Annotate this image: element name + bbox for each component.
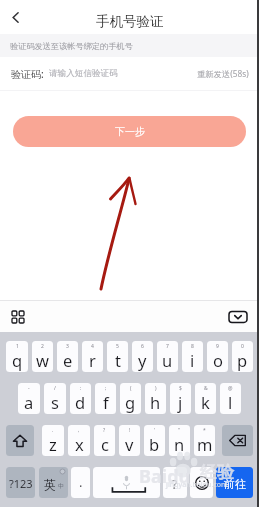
staticText: 英: [44, 477, 56, 492]
staticText: 前往: [224, 477, 246, 491]
button[interactable]: Hide keyboard: [227, 306, 249, 328]
button[interactable]: 6: [132, 341, 153, 372]
staticText: /: [54, 385, 56, 392]
button[interactable]: 0: [232, 341, 253, 372]
button[interactable]: ;: [95, 383, 116, 414]
staticText: :: [80, 385, 82, 392]
staticText: $: [179, 385, 182, 392]
button[interactable]: .: [42, 425, 64, 456]
button[interactable]: Back: [0, 2, 30, 32]
button[interactable]: Shift: [6, 425, 34, 456]
staticText: p: [237, 349, 248, 371]
button[interactable]: :: [70, 383, 91, 414]
staticText: e: [63, 349, 73, 371]
staticText: .: [79, 473, 83, 491]
button[interactable]: ?: [163, 467, 187, 498]
staticText: 1: [16, 343, 19, 350]
staticText: r: [89, 349, 96, 371]
staticText: u: [162, 349, 173, 371]
button[interactable]: ,: [68, 425, 90, 456]
button[interactable]: ': [144, 425, 165, 456]
staticText: g: [125, 391, 136, 413]
button[interactable]: 7: [157, 341, 178, 372]
staticText: h: [150, 391, 161, 413]
staticText: jingyan.baidu.com: [166, 480, 228, 490]
staticText: -: [28, 385, 30, 392]
staticText: !: [129, 427, 131, 434]
staticText: 0: [241, 343, 244, 350]
staticText: v: [125, 433, 134, 455]
button[interactable]: 2: [32, 341, 53, 372]
button[interactable]: *: [194, 425, 215, 456]
staticText: .: [52, 427, 54, 434]
staticText: 2: [41, 343, 44, 350]
staticText: *: [203, 427, 206, 434]
staticText: ?123: [9, 476, 33, 491]
button[interactable]: 8: [182, 341, 203, 372]
button[interactable]: -: [18, 383, 40, 414]
button[interactable]: 英: [39, 467, 68, 498]
button[interactable]: ?: [94, 425, 115, 456]
staticText: 9: [216, 343, 219, 350]
staticText: 下一步: [115, 125, 145, 138]
staticText: j: [178, 391, 183, 413]
staticText: ,: [78, 427, 80, 434]
staticText: (: [130, 385, 132, 392]
button[interactable]: $: [170, 383, 191, 414]
staticText: x: [75, 433, 84, 455]
button[interactable]: 重新发送(58s): [197, 68, 249, 79]
staticText: Baidu: [139, 464, 191, 489]
staticText: w: [36, 349, 49, 371]
staticText: z: [49, 433, 57, 455]
button[interactable]: Emoji: [190, 467, 213, 498]
button[interactable]: 1: [6, 341, 28, 372]
staticText: ): [155, 385, 157, 392]
staticText: 手机号验证: [96, 13, 164, 30]
staticText: 4: [91, 343, 94, 350]
staticText: n: [174, 433, 185, 455]
button[interactable]: 下一步: [13, 116, 246, 147]
staticText: m: [197, 433, 213, 455]
staticText: ?: [103, 427, 106, 434]
button[interactable]: @: [220, 383, 241, 414]
staticText: 6: [141, 343, 144, 350]
staticText: q: [12, 349, 23, 371]
button[interactable]: 9: [207, 341, 228, 372]
staticText: 3: [66, 343, 69, 350]
staticText: @: [228, 385, 233, 392]
staticText: y: [138, 349, 147, 371]
staticText: 中: [58, 482, 64, 490]
button[interactable]: /: [44, 383, 66, 414]
button[interactable]: ): [145, 383, 166, 414]
staticText: 请输入短信验证码: [49, 68, 118, 79]
staticText: ': [154, 427, 156, 434]
staticText: o: [213, 349, 223, 371]
button[interactable]: 4: [82, 341, 103, 372]
staticText: ?: [172, 476, 178, 492]
button[interactable]: (: [120, 383, 141, 414]
button[interactable]: Backspace: [222, 425, 253, 456]
button[interactable]: Keyboard menu: [8, 307, 28, 327]
staticText: f: [103, 391, 109, 413]
staticText: 7: [166, 343, 169, 350]
staticText: 验证码发送至该帐号绑定的手机号: [10, 41, 133, 51]
staticText: l: [228, 391, 233, 413]
button[interactable]: !: [119, 425, 140, 456]
staticText: t: [115, 349, 121, 371]
button[interactable]: Space: [93, 467, 160, 498]
button[interactable]: .: [71, 467, 90, 498]
button[interactable]: ": [169, 425, 190, 456]
button[interactable]: ?123: [6, 467, 35, 498]
staticText: 重新发送(58s): [197, 68, 249, 79]
staticText: s: [51, 391, 59, 413]
staticText: a: [24, 391, 34, 413]
button[interactable]: 5: [107, 341, 128, 372]
staticText: ": [178, 427, 181, 434]
staticText: b: [149, 433, 160, 455]
button[interactable]: &: [195, 383, 216, 414]
button[interactable]: 前往: [216, 467, 253, 498]
button[interactable]: 3: [57, 341, 78, 372]
staticText: 8: [191, 343, 194, 350]
staticText: 5: [116, 343, 119, 350]
staticText: i: [190, 349, 195, 371]
